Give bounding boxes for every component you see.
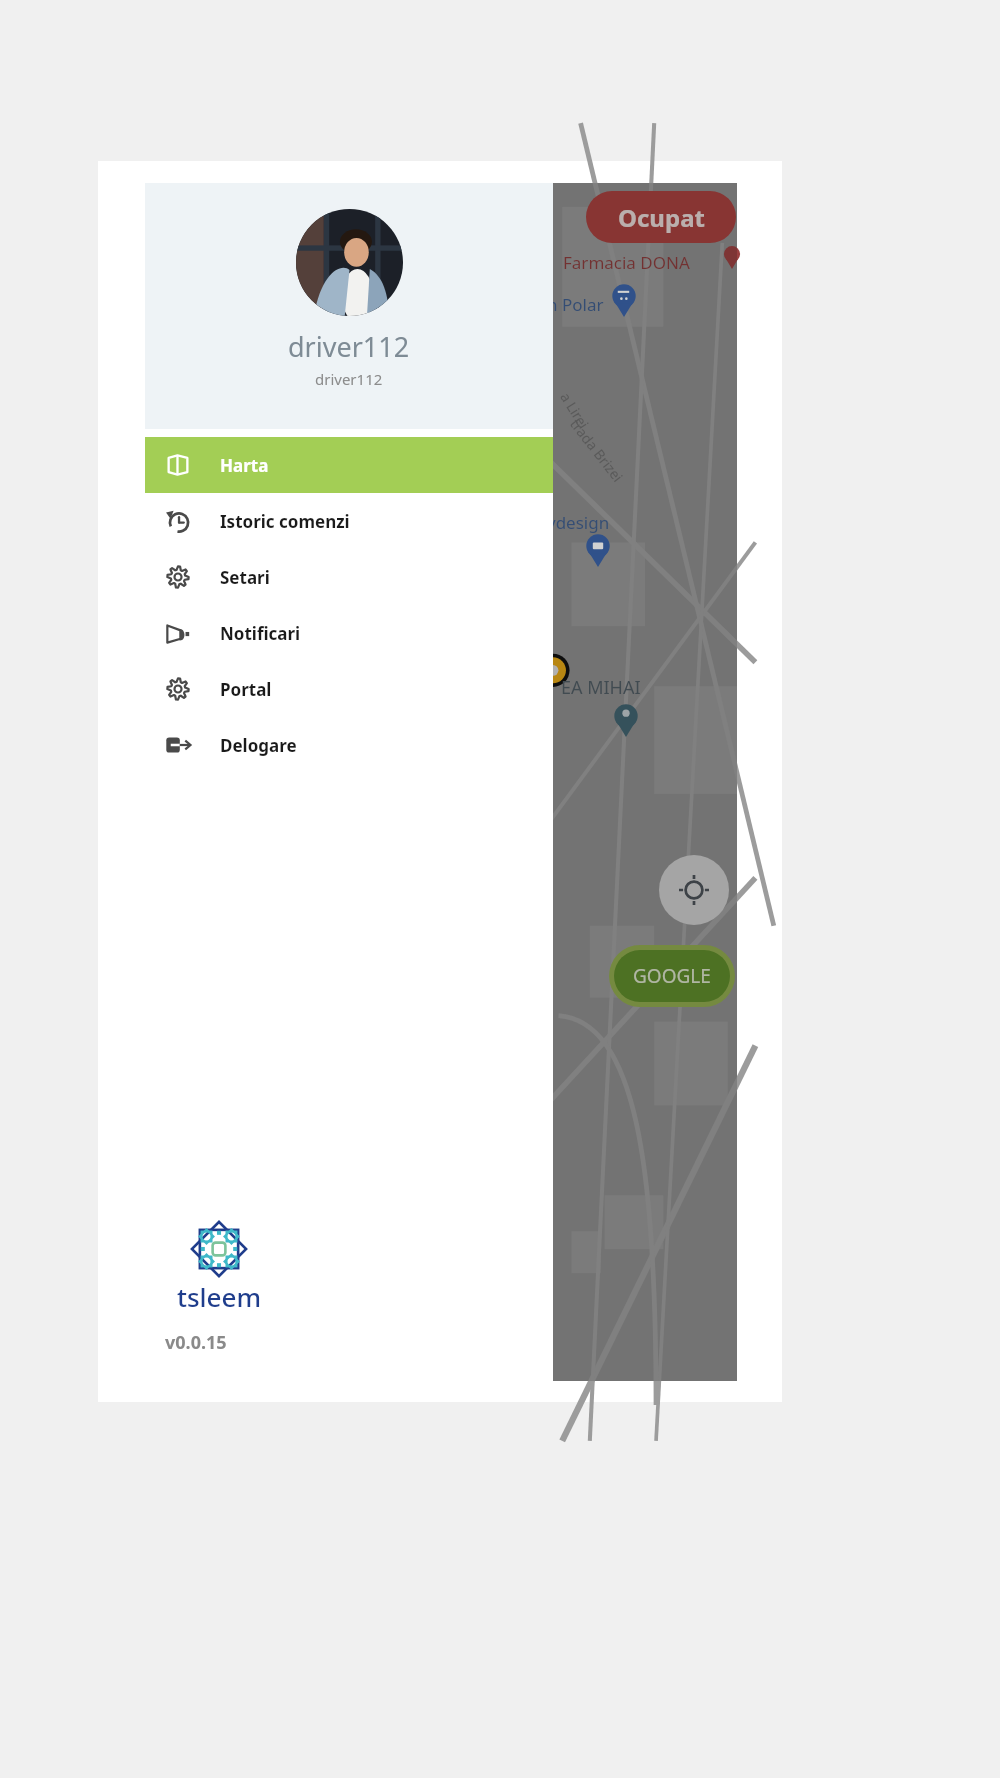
other: Notifications (165, 620, 191, 646)
staticText: Portal (220, 678, 272, 701)
staticText: tsleem (177, 1279, 262, 1314)
staticText: v0.0.15 (165, 1330, 227, 1355)
staticText: a Lirei (556, 388, 594, 432)
other: Log out (165, 732, 191, 758)
staticText: vdesign (547, 511, 610, 534)
other: Map (165, 452, 191, 478)
button[interactable]: Log out (145, 717, 553, 773)
button[interactable]: Order history (145, 493, 553, 549)
button[interactable]: Settings (145, 661, 553, 717)
other: Settings (165, 676, 191, 702)
staticText: driver112 (288, 328, 410, 365)
staticText: n Polar (547, 293, 604, 316)
staticText: Setari (220, 566, 270, 589)
button[interactable]: Ocupat (586, 191, 736, 243)
staticText: GOOGLE (633, 963, 711, 989)
staticText: Notificari (220, 622, 301, 645)
staticText: driver112 (315, 369, 383, 389)
other: Settings (165, 564, 191, 590)
button[interactable]: Map (145, 437, 553, 493)
button[interactable]: Settings (145, 549, 553, 605)
other: Order history (165, 508, 191, 534)
staticText: trada Brizei (566, 415, 628, 486)
staticText: Ocupat (618, 201, 705, 234)
button[interactable]: My location (659, 855, 729, 925)
staticText: EA MIHAI (561, 675, 641, 700)
staticText: Farmacia DONA (563, 251, 690, 274)
button[interactable]: Notifications (145, 605, 553, 661)
staticText: Harta (220, 454, 269, 477)
button[interactable]: GOOGLE (614, 950, 730, 1002)
staticText: Istoric comenzi (220, 510, 350, 533)
staticText: Delogare (220, 734, 297, 757)
